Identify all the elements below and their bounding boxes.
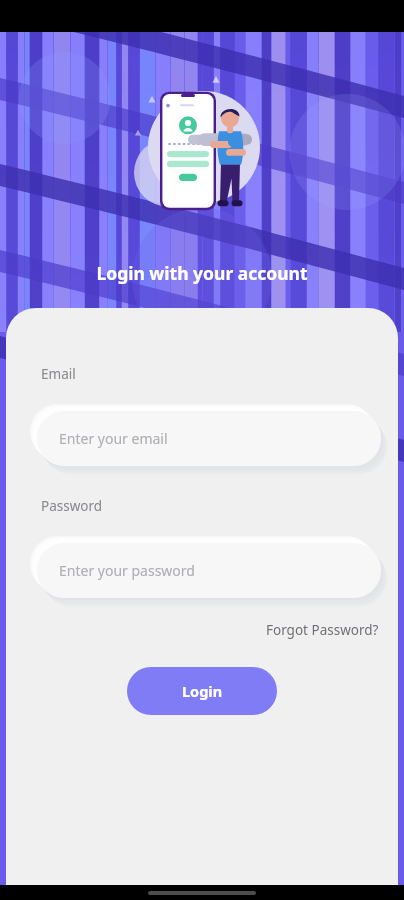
staticText: Enter your password (59, 561, 195, 580)
button[interactable]: Login (127, 667, 277, 715)
staticText: Password (41, 497, 103, 515)
other: Home (148, 891, 256, 895)
button[interactable]: Forgot Password? (261, 617, 384, 643)
staticText: Email (41, 365, 76, 383)
staticText: Login with your account (96, 261, 308, 285)
staticText: Login (182, 681, 223, 701)
staticText: Forgot Password? (266, 621, 379, 639)
button[interactable]: Enter your email (37, 411, 381, 466)
button[interactable]: Enter your password (37, 543, 381, 598)
staticText: Enter your email (59, 429, 168, 448)
